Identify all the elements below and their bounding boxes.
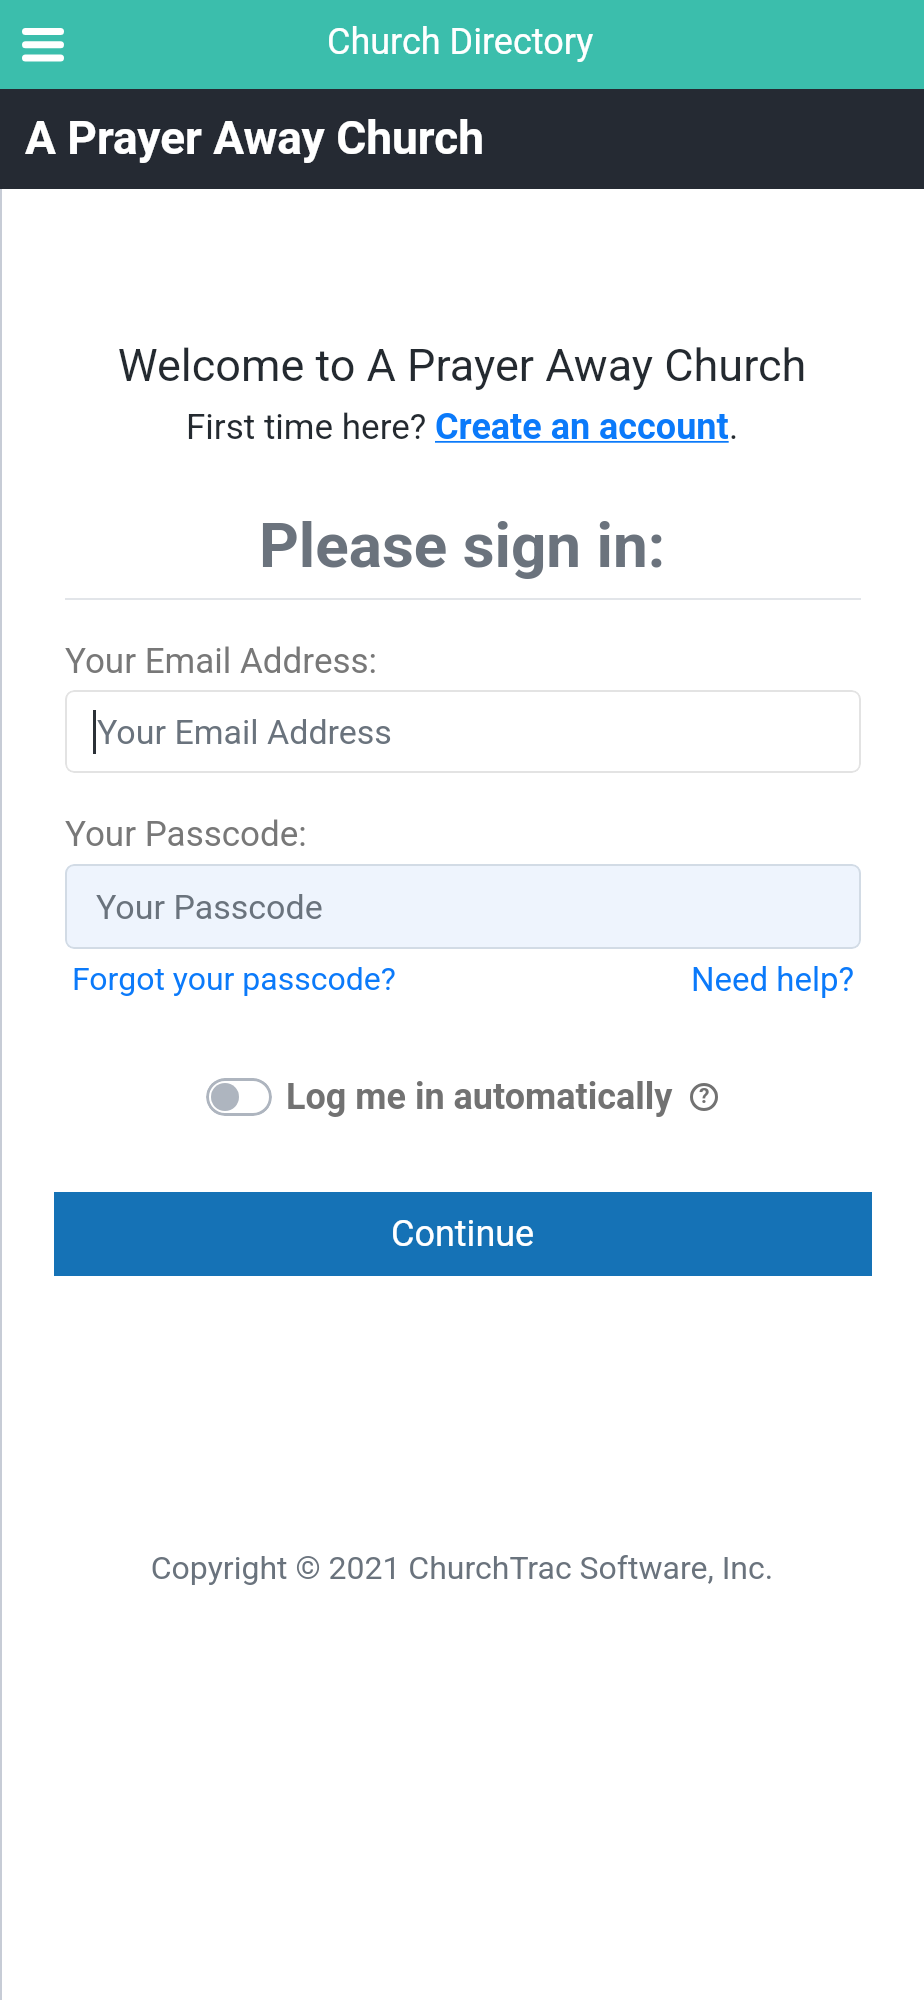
staticText: Need help? bbox=[691, 960, 855, 999]
staticText: First time here? bbox=[186, 407, 435, 448]
staticText: . bbox=[729, 407, 739, 448]
button[interactable]: Log me in automatically bbox=[206, 1078, 272, 1116]
staticText: Your Email Address bbox=[97, 712, 392, 752]
button[interactable]: Your Email Address bbox=[65, 690, 861, 773]
staticText: Welcome to A Prayer Away Church bbox=[0, 339, 924, 392]
staticText: A Prayer Away Church bbox=[25, 111, 484, 165]
staticText: Create an account bbox=[435, 406, 729, 448]
staticText: Please sign in: bbox=[0, 509, 924, 582]
button[interactable]: Create an account bbox=[435, 406, 729, 448]
staticText: Forgot your passcode? bbox=[72, 960, 396, 998]
button[interactable]: Help bbox=[689, 1082, 719, 1112]
staticText: Continue bbox=[391, 1213, 535, 1255]
staticText: ? bbox=[699, 1084, 710, 1109]
button[interactable]: Need help? bbox=[691, 960, 855, 999]
staticText: Your Passcode bbox=[96, 887, 323, 927]
staticText: Copyright © 2021 ChurchTrac Software, In… bbox=[0, 1549, 924, 1587]
button[interactable]: Your Passcode bbox=[65, 864, 861, 949]
staticText: Church Directory bbox=[327, 21, 594, 63]
button[interactable]: Continue bbox=[54, 1192, 872, 1276]
staticText: Your Email Address: bbox=[65, 641, 378, 682]
staticText: Your Passcode: bbox=[65, 814, 307, 855]
staticText: Log me in automatically bbox=[286, 1076, 673, 1118]
button[interactable]: Forgot your passcode? bbox=[72, 960, 396, 998]
button[interactable]: Open navigation menu bbox=[0, 0, 88, 89]
